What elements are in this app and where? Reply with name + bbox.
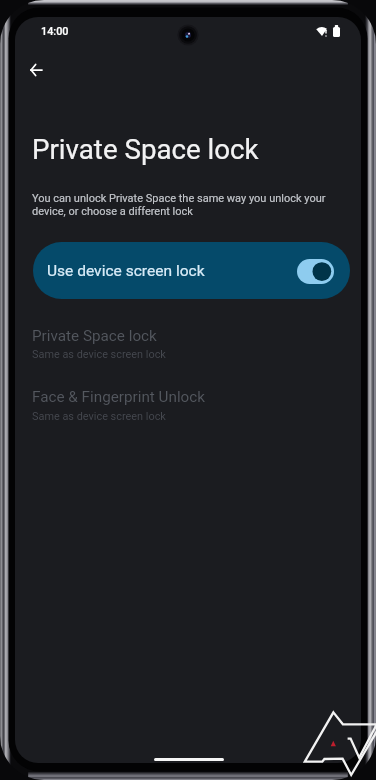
staticText: 14:00: [41, 25, 69, 38]
staticText: Private Space lock: [32, 327, 157, 345]
staticText: You can unlock Private Space the same wa…: [32, 191, 326, 217]
button[interactable]: Private Space lock: [15, 321, 361, 366]
staticText: Same as device screen lock: [32, 410, 166, 423]
button[interactable]: Use device screen lock: [33, 242, 350, 299]
staticText: Face & Fingerprint Unlock: [32, 388, 206, 406]
button[interactable]: Navigate up: [15, 46, 60, 94]
staticText: Use device screen lock: [47, 262, 205, 280]
other: Wi-Fi no internet: [316, 26, 328, 37]
staticText: Private Space lock: [32, 133, 259, 165]
other: Battery: [333, 25, 340, 37]
staticText: Same as device screen lock: [32, 348, 166, 361]
button[interactable]: Use device screen lock: [297, 259, 334, 284]
button[interactable]: Face & Fingerprint Unlock: [15, 382, 361, 428]
